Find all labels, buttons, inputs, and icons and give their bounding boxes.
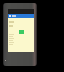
button[interactable]: Menu <box>8 14 34 18</box>
